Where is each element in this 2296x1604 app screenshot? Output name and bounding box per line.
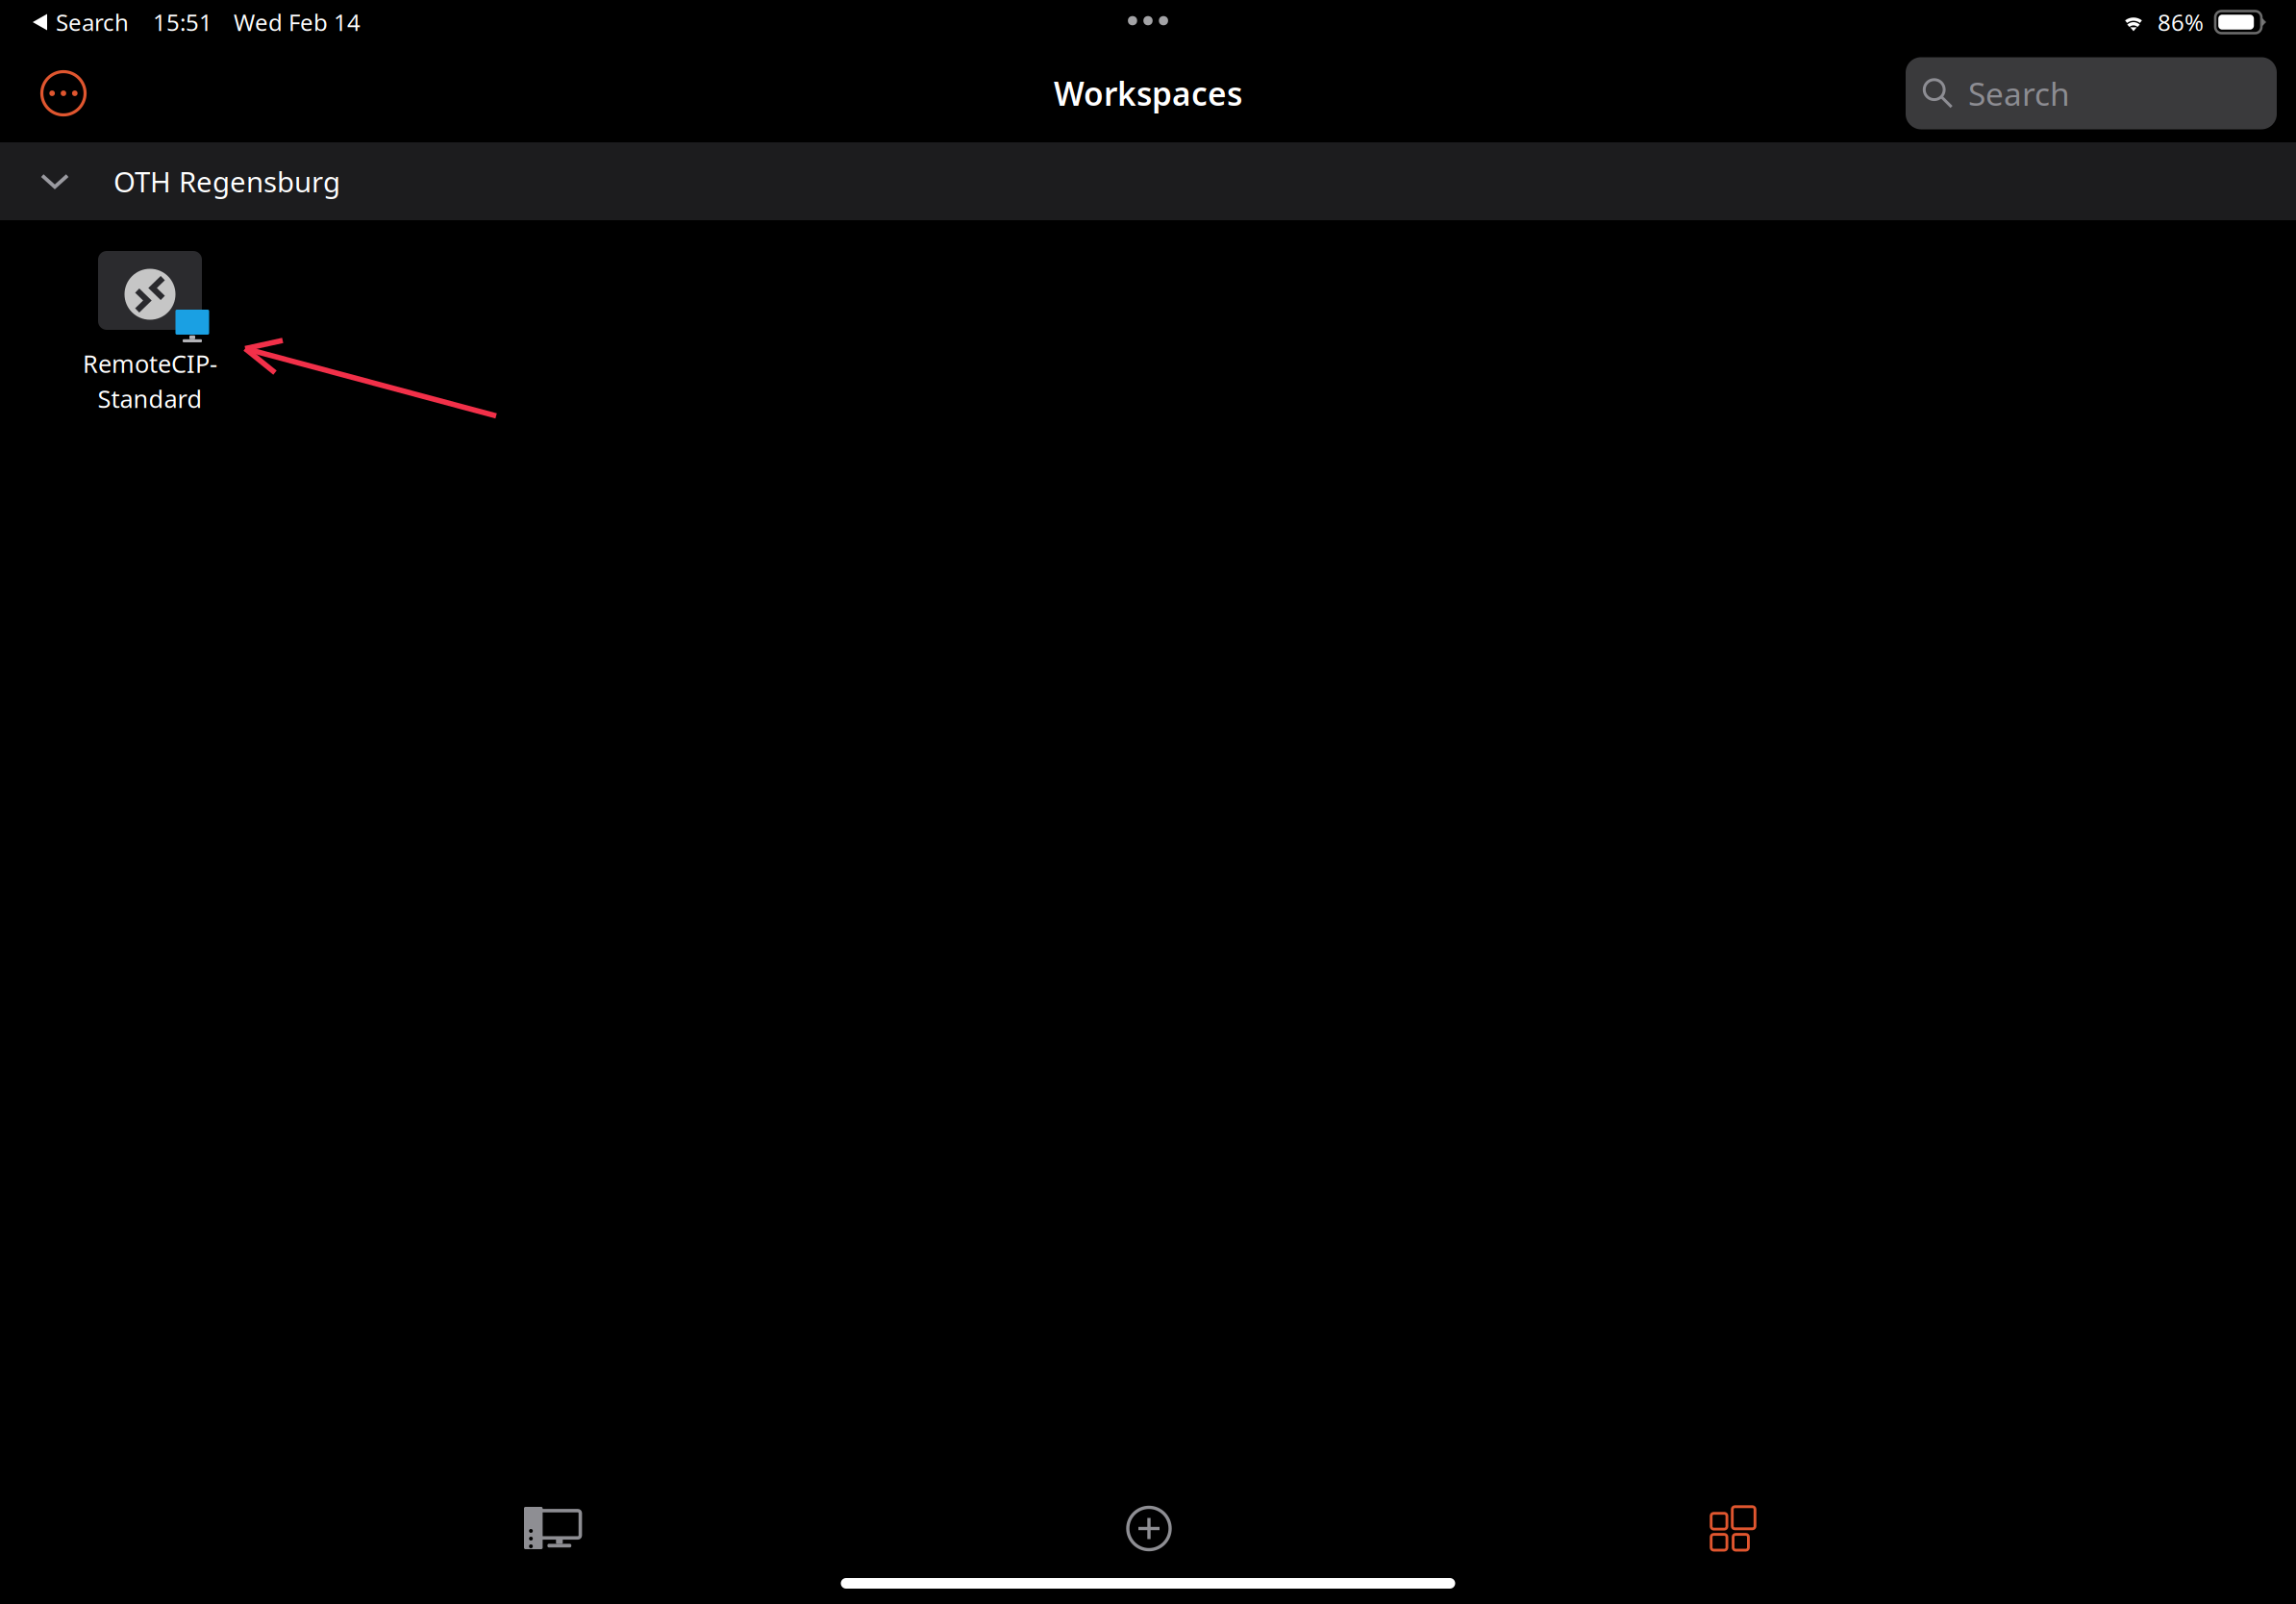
staticText: RemoteCIP- [83,347,217,379]
staticText: Standard [98,382,202,415]
staticText: 15:51 [153,7,212,38]
button[interactable]: Search [1906,57,2277,129]
staticText: Wed Feb 14 [234,7,361,38]
staticText: OTH Regensburg [113,163,340,200]
button[interactable]: Add PC or Workspace [1099,1490,1199,1567]
staticText: 86% [2158,7,2204,38]
button[interactable]: PCs [502,1490,602,1567]
button[interactable]: Workspaces [1683,1490,1783,1567]
staticText: Search [56,7,129,38]
button[interactable]: More options [26,57,101,130]
button[interactable]: OTH Regensburg [0,142,2296,220]
button[interactable]: RemoteCIP- [54,251,246,415]
staticText: Workspaces [1054,72,1242,115]
staticText: Search [1968,72,2070,115]
